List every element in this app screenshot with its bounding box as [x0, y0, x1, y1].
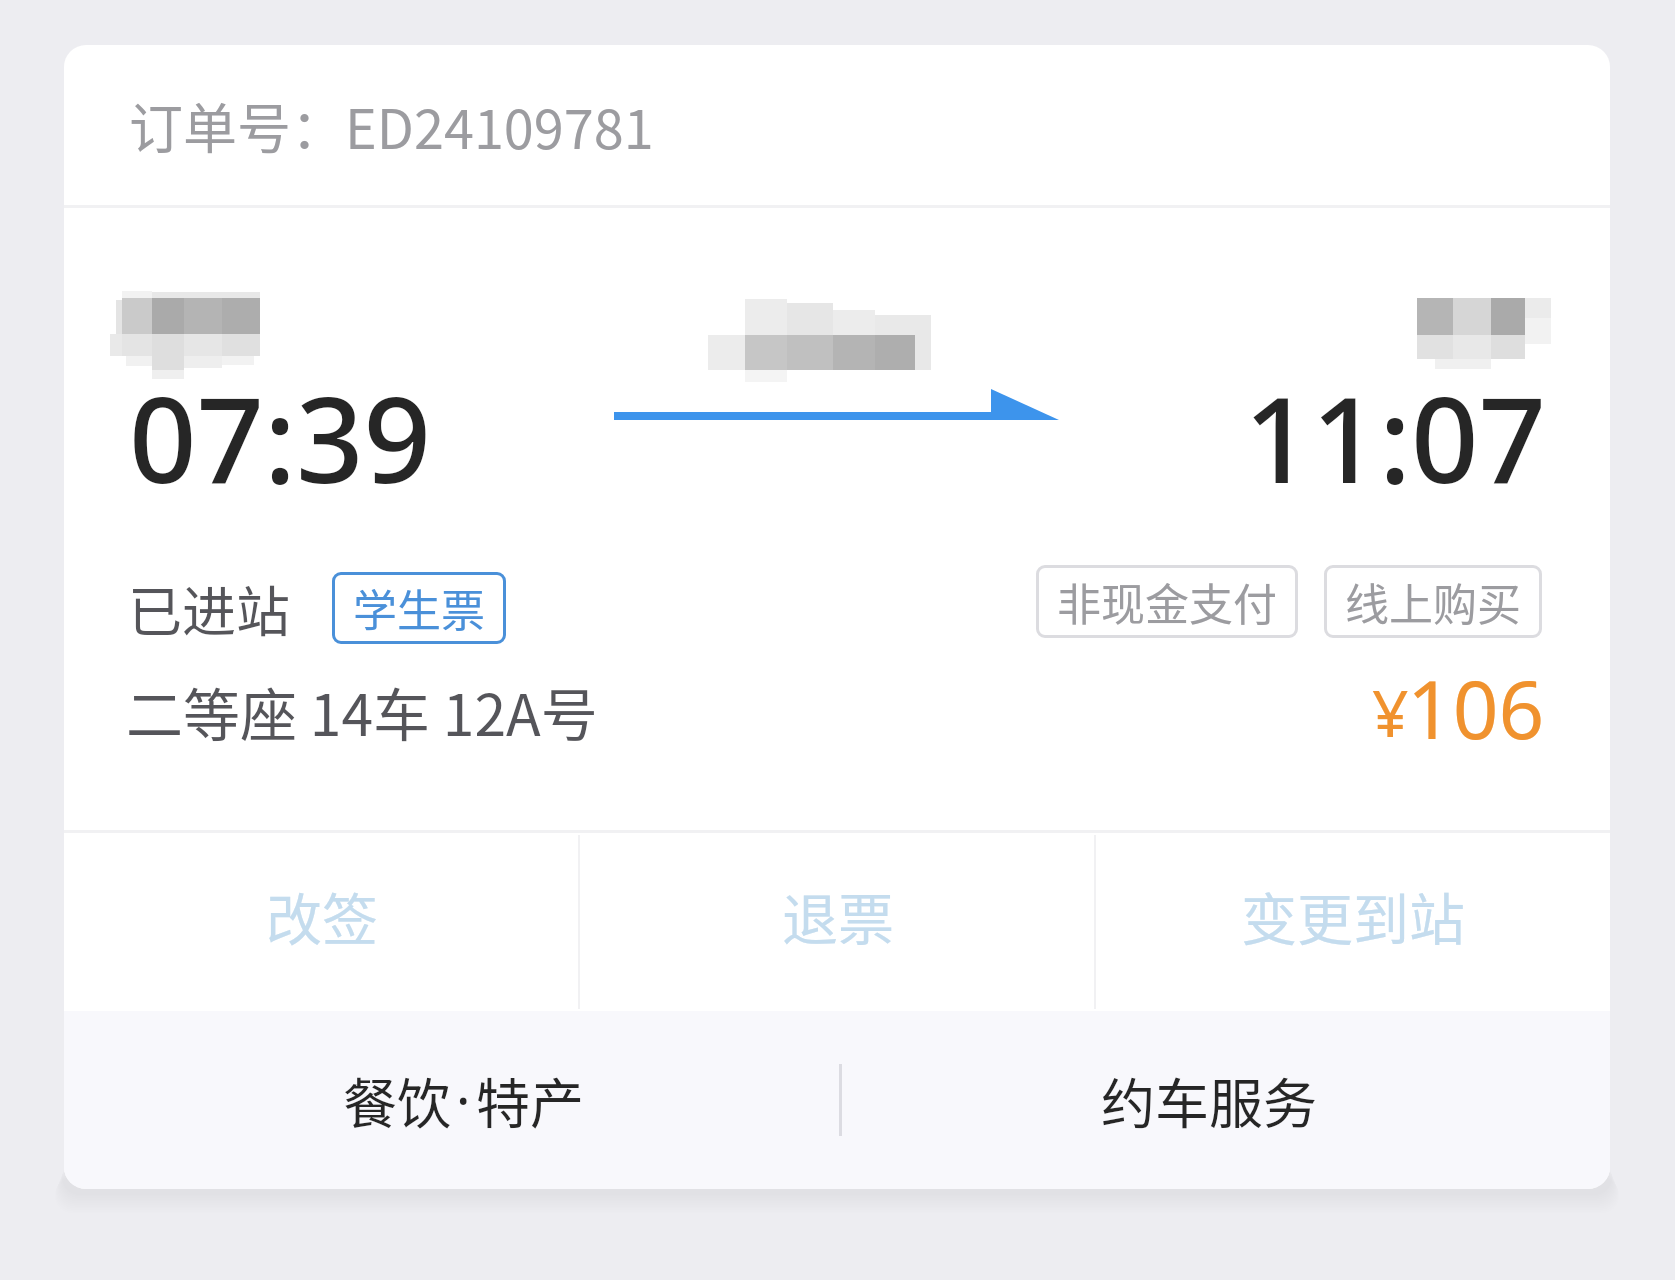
- staticText: ·: [456, 1063, 471, 1137]
- button[interactable]: 线上购买: [1324, 565, 1542, 638]
- button[interactable]: 学生票: [332, 572, 506, 644]
- staticText: 餐饮: [343, 1061, 451, 1139]
- staticText: 07:39: [129, 357, 432, 518]
- staticText: 订单号：ED24109781: [129, 86, 654, 164]
- staticText: 11:07: [1244, 357, 1547, 518]
- staticText: 变更到站: [1241, 875, 1465, 956]
- button[interactable]: 退票: [580, 826, 1095, 1004]
- button[interactable]: 约车服务: [1101, 1011, 1317, 1189]
- staticText: 106: [1407, 653, 1545, 762]
- button[interactable]: 改签: [64, 826, 580, 1004]
- staticText: 学生票: [353, 576, 485, 640]
- staticText: 约车服务: [1101, 1061, 1317, 1139]
- staticText: 改签: [266, 875, 378, 956]
- staticText: 二等座 14车 12A号: [126, 670, 598, 753]
- button[interactable]: Ticket details: [64, 208, 1610, 830]
- button[interactable]: 变更到站: [1095, 826, 1610, 1004]
- staticText: 非现金支付: [1057, 570, 1277, 634]
- staticText: 退票: [782, 875, 894, 956]
- button[interactable]: 非现金支付: [1036, 565, 1298, 638]
- staticText: 特产: [476, 1061, 584, 1139]
- button[interactable]: 餐饮: [343, 1011, 584, 1189]
- staticText: 线上购买: [1345, 570, 1521, 634]
- staticText: ¥: [1372, 669, 1409, 756]
- staticText: 已进站: [128, 569, 290, 647]
